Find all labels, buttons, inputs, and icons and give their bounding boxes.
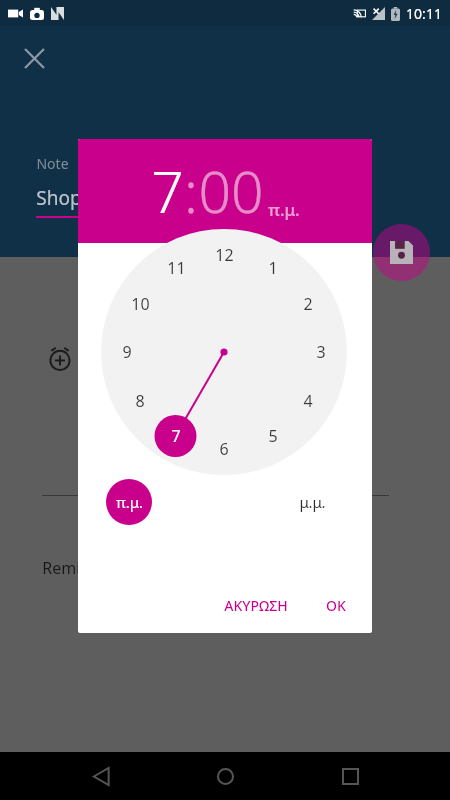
button[interactable]: π.μ. [106, 479, 152, 525]
staticText: Shop [36, 185, 82, 211]
button[interactable]: 2 [291, 292, 325, 316]
staticText: 1 [268, 257, 278, 279]
button[interactable]: 9 [110, 340, 144, 364]
other: Add alarm [48, 347, 72, 371]
staticText: 7 [151, 152, 184, 230]
staticText: 2 [303, 293, 313, 315]
staticText: OK [326, 596, 346, 615]
staticText: 4 [303, 390, 313, 412]
button[interactable]: 8 [123, 389, 157, 413]
staticText: Reminder [42, 557, 116, 579]
button[interactable]: 11 [159, 256, 193, 280]
staticText: 3 [316, 341, 326, 363]
staticText: : [184, 152, 198, 230]
button[interactable]: 7 [159, 424, 193, 448]
staticText: 6 [219, 438, 229, 460]
button[interactable]: 10 [123, 292, 157, 316]
button[interactable]: OK [316, 588, 356, 623]
staticText: Note [36, 154, 69, 173]
staticText: μ.μ. [299, 492, 326, 512]
staticText: 10:11 [406, 4, 442, 23]
button[interactable]: Close [16, 40, 52, 76]
staticText: 10 [131, 293, 150, 315]
staticText: ΑΚΥΡΩΣΗ [224, 596, 288, 615]
staticText: 9 [122, 341, 132, 363]
button[interactable]: ΑΚΥΡΩΣΗ [214, 588, 298, 623]
button[interactable]: 3 [304, 340, 338, 364]
staticText: 12 [215, 244, 234, 266]
button[interactable]: Home [201, 752, 249, 800]
button[interactable]: μ.μ. [284, 479, 340, 525]
staticText: 5 [268, 425, 278, 447]
button[interactable]: 5 [256, 424, 290, 448]
staticText: π.μ. [116, 492, 143, 512]
button[interactable]: Back [77, 752, 125, 800]
button[interactable]: 6 [207, 437, 241, 461]
button[interactable]: 4 [291, 389, 325, 413]
button[interactable]: Recents [326, 752, 374, 800]
button[interactable]: 1 [256, 256, 290, 280]
staticText: 11 [167, 257, 186, 279]
button[interactable]: π.μ. [268, 198, 300, 221]
button[interactable]: 00 [198, 152, 264, 230]
button[interactable]: 12 [207, 243, 241, 267]
staticText: π.μ. [268, 198, 300, 221]
staticText: 00 [198, 152, 264, 230]
button[interactable]: 7 [151, 152, 184, 230]
staticText: 7 [171, 425, 181, 447]
staticText: 8 [135, 390, 145, 412]
button[interactable]: Save [373, 224, 430, 281]
